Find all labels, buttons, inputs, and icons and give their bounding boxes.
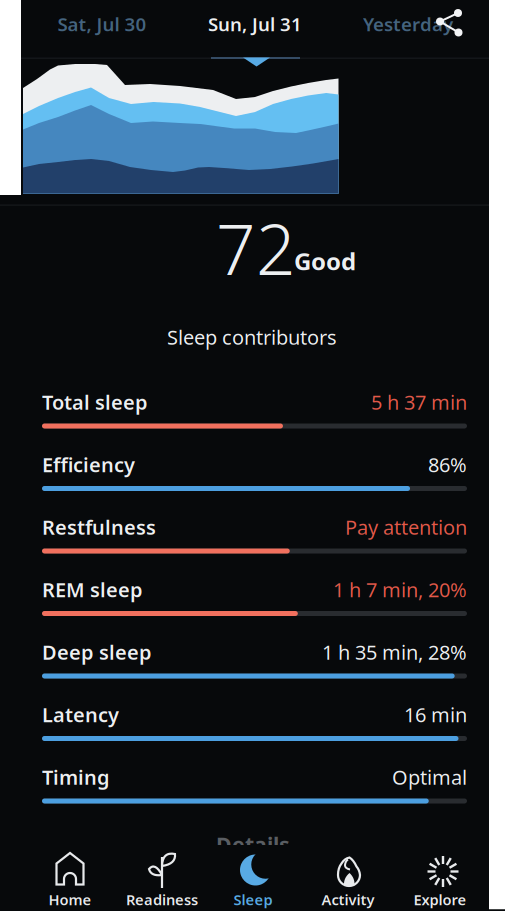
- staticText: Efficiency: [42, 451, 135, 478]
- staticText: Sleep: [233, 890, 272, 909]
- staticText: Details: [216, 830, 290, 859]
- button[interactable]: Home: [25, 845, 115, 911]
- staticText: Optimal: [392, 764, 467, 790]
- button[interactable]: Sat, Jul 30: [32, 2, 172, 46]
- staticText: Yesterday: [363, 12, 453, 36]
- button[interactable]: Readiness: [117, 845, 207, 911]
- staticText: Readiness: [126, 890, 198, 909]
- staticText: Home: [48, 890, 91, 909]
- staticText: Sat, Jul 30: [57, 12, 146, 36]
- staticText: Sleep contributors: [167, 324, 337, 350]
- staticText: Pay attention: [345, 514, 467, 540]
- staticText: REM sleep: [42, 576, 143, 603]
- button[interactable]: Sun, Jul 31: [185, 2, 325, 46]
- button[interactable]: Sleep: [208, 845, 298, 911]
- staticText: Restfulness: [42, 514, 156, 540]
- staticText: Latency: [42, 701, 119, 728]
- staticText: Total sleep: [42, 389, 148, 415]
- staticText: 16 min: [404, 701, 467, 728]
- staticText: Explore: [413, 890, 466, 909]
- staticText: 1 h 7 min, 20%: [333, 576, 467, 603]
- staticText: 86%: [428, 451, 467, 478]
- staticText: Timing: [42, 764, 110, 790]
- staticText: 5 h 37 min: [371, 389, 467, 415]
- button[interactable]: Activity: [303, 845, 393, 911]
- button[interactable]: Share: [424, 0, 470, 46]
- staticText: Deep sleep: [42, 639, 152, 665]
- staticText: 1 h 35 min, 28%: [322, 639, 467, 665]
- button[interactable]: Yesterday: [343, 2, 473, 46]
- staticText: Good: [294, 245, 356, 277]
- staticText: Activity: [321, 890, 374, 909]
- staticText: 72: [216, 202, 296, 294]
- button[interactable]: Explore: [395, 845, 485, 911]
- staticText: Sun, Jul 31: [208, 12, 302, 36]
